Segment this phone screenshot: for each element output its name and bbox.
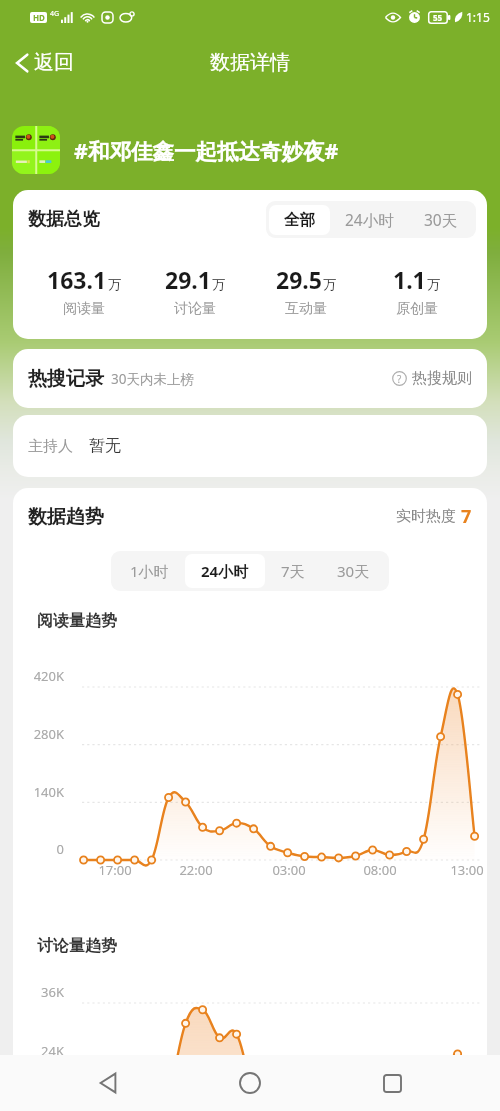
staticText: 讨论量	[174, 300, 216, 318]
button[interactable]: 24小时	[185, 554, 265, 588]
button[interactable]: 30天	[321, 554, 386, 588]
button[interactable]: Home	[217, 1055, 283, 1111]
staticText: ?	[397, 372, 402, 386]
staticText: 24小时	[345, 209, 394, 230]
staticText: 22:00	[171, 861, 221, 879]
staticText: 13:00	[442, 861, 487, 879]
staticText: 万	[323, 276, 336, 292]
button[interactable]: 返回	[8, 42, 80, 83]
staticText: 万	[427, 276, 440, 292]
button[interactable]: Back	[76, 1055, 142, 1111]
staticText: 36K	[21, 983, 64, 1001]
staticText: 数据总览	[28, 208, 100, 231]
staticText: 7天	[281, 561, 305, 581]
staticText: 140K	[21, 783, 64, 801]
staticText: 全部	[284, 210, 315, 230]
staticText: 数据趋势	[28, 505, 104, 529]
staticText: 讨论量趋势	[37, 936, 117, 956]
staticText: 163.1	[47, 264, 107, 295]
staticText: 阅读量趋势	[37, 611, 117, 631]
staticText: 24K	[21, 1042, 64, 1060]
staticText: 热搜规则	[412, 369, 472, 388]
staticText: 30天	[424, 209, 458, 230]
staticText: 08:00	[355, 861, 405, 879]
staticText: 7	[461, 504, 472, 529]
staticText: 420K	[21, 667, 64, 685]
staticText: #和邓佳鑫一起抵达奇妙夜#	[74, 136, 339, 165]
staticText: 阅读量	[63, 300, 105, 318]
staticText: 24小时	[201, 561, 249, 581]
staticText: 1:15	[466, 9, 490, 25]
staticText: 数据详情	[210, 50, 290, 75]
button[interactable]: 24小时	[330, 204, 409, 235]
button[interactable]: 热搜记录	[13, 349, 487, 408]
staticText: 0	[21, 840, 64, 858]
staticText: 17:00	[90, 861, 140, 879]
button[interactable]: 1小时	[114, 554, 185, 588]
staticText: 互动量	[285, 300, 327, 318]
staticText: 主持人	[28, 437, 73, 456]
staticText: 55	[433, 12, 443, 23]
staticText: 280K	[21, 725, 64, 743]
staticText: 万	[212, 276, 225, 292]
staticText: 29.1	[165, 264, 211, 295]
staticText: 30天内未上榜	[111, 370, 194, 388]
staticText: 4G	[50, 9, 60, 19]
staticText: 万	[108, 276, 121, 292]
staticText: 1.1	[393, 264, 426, 295]
staticText: 30天	[337, 561, 370, 581]
staticText: 实时热度	[396, 507, 456, 526]
staticText: 原创量	[396, 300, 438, 318]
staticText: 返回	[34, 50, 74, 75]
button[interactable]: 7天	[265, 554, 321, 588]
button[interactable]: 30天	[409, 204, 473, 235]
staticText: 29.5	[276, 264, 322, 295]
button[interactable]: Recents	[359, 1055, 425, 1111]
staticText: HD	[33, 12, 45, 23]
button[interactable]: 全部	[269, 205, 330, 235]
staticText: 03:00	[264, 861, 314, 879]
staticText: 暂无	[89, 436, 121, 456]
staticText: 热搜记录	[28, 367, 104, 391]
staticText: 1小时	[130, 561, 169, 581]
